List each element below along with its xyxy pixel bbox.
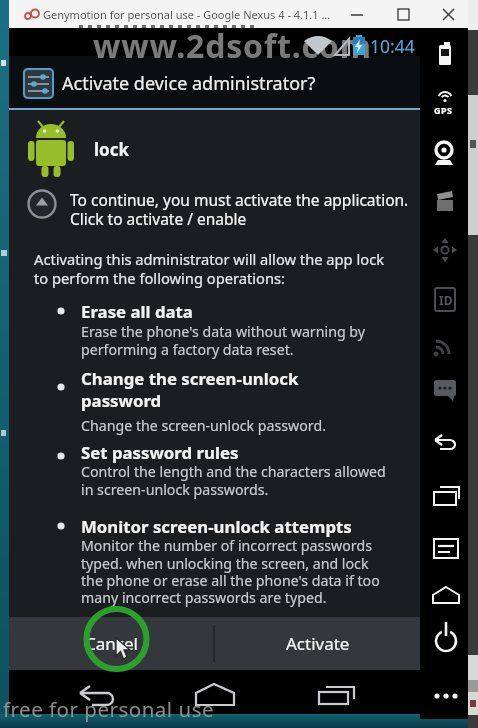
staticText: Activate device administrator?: [62, 71, 316, 96]
staticText: Cancel: [85, 632, 138, 655]
staticText: Monitor the number of incorrect password…: [81, 536, 380, 607]
staticText: ID: [439, 292, 453, 308]
staticText: 10:44: [370, 34, 415, 58]
staticText: Erase the phone's data without warning b…: [81, 322, 366, 359]
staticText: Change the screen-unlock password: [81, 367, 299, 412]
staticText: To continue, you must activate the appli…: [70, 189, 409, 210]
button[interactable]: [185, 676, 245, 712]
staticText: GPS: [434, 104, 453, 116]
staticText: Activate: [286, 632, 350, 655]
staticText: lock: [94, 138, 130, 161]
button[interactable]: [64, 676, 124, 712]
staticText: Monitor screen-unlock attempts: [81, 515, 352, 538]
staticText: Control the length and the characters al…: [81, 462, 386, 499]
staticText: Erase all data: [81, 300, 193, 323]
button[interactable]: Activate: [215, 617, 420, 670]
staticText: Genymotion for personal use - Google Nex…: [43, 7, 331, 22]
staticText: free for personal use: [3, 695, 215, 723]
button[interactable]: Cancel: [9, 617, 213, 670]
staticText: Set password rules: [81, 441, 239, 464]
button[interactable]: [308, 676, 368, 712]
staticText: Activating this administrator will allow…: [34, 249, 385, 288]
staticText: Change the screen-unlock password.: [81, 416, 326, 435]
staticText: www.2dsoft.com: [93, 24, 372, 68]
staticText: Click to activate / enable: [70, 208, 247, 229]
